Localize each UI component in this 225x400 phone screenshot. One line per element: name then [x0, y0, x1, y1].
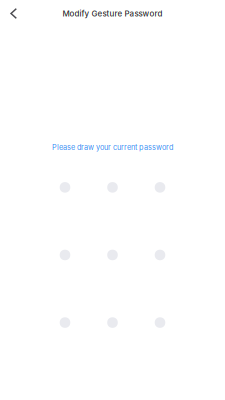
staticText: Modify Gesture Password: [62, 9, 162, 18]
button[interactable]: Pattern node 6: [155, 250, 165, 260]
button[interactable]: Pattern node 8: [107, 317, 118, 328]
button[interactable]: Pattern node 1: [60, 182, 70, 193]
button[interactable]: Pattern node 4: [60, 250, 70, 260]
button[interactable]: Back: [0, 1, 25, 26]
button[interactable]: Pattern node 5: [107, 250, 118, 260]
button[interactable]: Pattern node 7: [60, 317, 70, 328]
staticText: Please draw your current password: [52, 143, 173, 152]
button[interactable]: Pattern node 3: [155, 182, 165, 193]
button[interactable]: Pattern node 9: [155, 317, 165, 328]
button[interactable]: Pattern node 2: [107, 182, 118, 193]
